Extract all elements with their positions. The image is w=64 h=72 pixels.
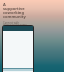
- staticText: A supportive coworking community: [3, 2, 27, 19]
- staticText: Connect with others on the same journey: [3, 21, 27, 30]
